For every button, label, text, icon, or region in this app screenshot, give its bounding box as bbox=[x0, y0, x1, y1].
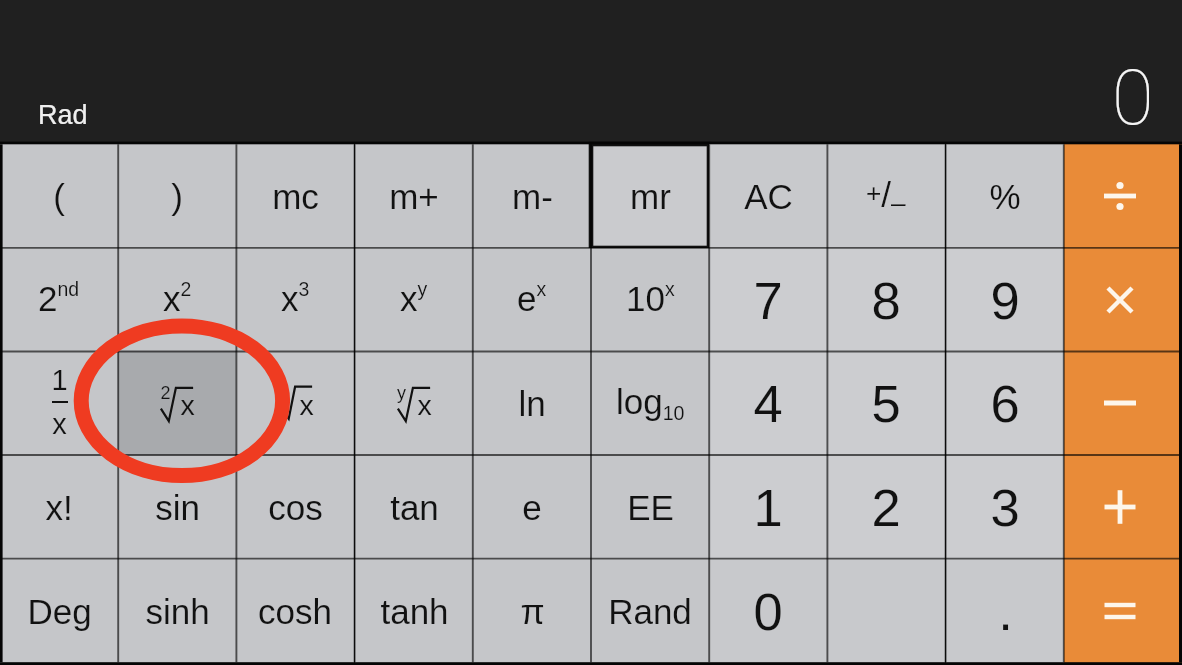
button[interactable]: Rand bbox=[591, 559, 709, 663]
button[interactable]: 2 bbox=[118, 351, 236, 455]
button[interactable]: y bbox=[355, 351, 473, 455]
button[interactable]: +/– bbox=[827, 144, 945, 248]
button[interactable]: log10 bbox=[591, 351, 709, 455]
button[interactable]: AC bbox=[709, 144, 827, 248]
staticText: 5 bbox=[871, 374, 901, 433]
staticText: ) bbox=[171, 177, 183, 216]
button[interactable]: . bbox=[946, 559, 1064, 663]
staticText: ( bbox=[53, 177, 65, 216]
staticText: x! bbox=[45, 488, 73, 527]
button[interactable]: cos bbox=[236, 455, 354, 559]
button[interactable]: 5 bbox=[827, 351, 945, 455]
button[interactable]: 8 bbox=[827, 248, 945, 352]
staticText: 6 bbox=[990, 374, 1020, 433]
staticText: 10x bbox=[626, 278, 675, 318]
button[interactable]: Multiply bbox=[1064, 248, 1182, 352]
staticText: 7 bbox=[753, 271, 783, 330]
staticText: x3 bbox=[281, 278, 310, 318]
staticText: m- bbox=[512, 177, 553, 216]
button[interactable]: tanh bbox=[355, 559, 473, 663]
staticText: Rad bbox=[38, 100, 88, 130]
button[interactable]: 1 bbox=[0, 351, 118, 455]
staticText: x bbox=[180, 389, 195, 421]
staticText: π bbox=[520, 592, 545, 631]
staticText: x bbox=[417, 389, 432, 421]
staticText: 0 bbox=[1112, 53, 1154, 142]
button[interactable]: Equals bbox=[1064, 559, 1182, 663]
staticText: e bbox=[522, 488, 542, 527]
staticText: 2 bbox=[160, 383, 171, 403]
button[interactable]: x! bbox=[0, 455, 118, 559]
button[interactable]: 10x bbox=[591, 248, 709, 352]
staticText: 8 bbox=[871, 271, 901, 330]
button[interactable]: cosh bbox=[236, 559, 354, 663]
button[interactable]: sinh bbox=[118, 559, 236, 663]
staticText: x bbox=[299, 389, 314, 421]
staticText: ex bbox=[517, 278, 547, 318]
button[interactable]: Divide bbox=[1064, 144, 1182, 248]
button[interactable]: Deg bbox=[0, 559, 118, 663]
staticText: sin bbox=[155, 488, 200, 527]
staticText: tanh bbox=[380, 592, 449, 631]
staticText: 4 bbox=[753, 374, 783, 433]
button[interactable]: 4 bbox=[709, 351, 827, 455]
button[interactable]: 3 bbox=[946, 455, 1064, 559]
button[interactable]: Plus bbox=[1064, 455, 1182, 559]
button[interactable]: mc bbox=[236, 144, 354, 248]
staticText: 9 bbox=[990, 271, 1020, 330]
button[interactable]: ) bbox=[118, 144, 236, 248]
staticText: ln bbox=[518, 384, 546, 423]
staticText: Rand bbox=[608, 592, 692, 631]
button[interactable]: 2nd bbox=[0, 248, 118, 352]
button[interactable]: tan bbox=[355, 455, 473, 559]
staticText: Deg bbox=[27, 592, 92, 631]
staticText: x2 bbox=[163, 278, 192, 318]
staticText: mc bbox=[272, 177, 319, 216]
staticText: . bbox=[998, 582, 1013, 641]
staticText: log10 bbox=[616, 382, 685, 424]
staticText: +/– bbox=[866, 175, 906, 218]
staticText: 0 bbox=[753, 582, 783, 641]
staticText: 3 bbox=[990, 478, 1020, 537]
button[interactable]: ln bbox=[473, 351, 591, 455]
button[interactable]: xy bbox=[355, 248, 473, 352]
button[interactable]: 7 bbox=[709, 248, 827, 352]
button[interactable]: 2 bbox=[827, 455, 945, 559]
button[interactable]: π bbox=[473, 559, 591, 663]
staticText: cosh bbox=[258, 592, 332, 631]
staticText: xy bbox=[400, 278, 428, 318]
staticText: AC bbox=[744, 177, 793, 216]
staticText: y bbox=[397, 383, 406, 403]
button[interactable]: ex bbox=[473, 248, 591, 352]
button[interactable]: mr bbox=[591, 144, 709, 248]
button[interactable]: e bbox=[473, 455, 591, 559]
staticText: cos bbox=[268, 488, 323, 527]
staticText: 1 bbox=[51, 364, 68, 396]
staticText: x bbox=[52, 408, 67, 440]
button[interactable]: m- bbox=[473, 144, 591, 248]
staticText: EE bbox=[627, 488, 674, 527]
staticText: sinh bbox=[145, 592, 210, 631]
button[interactable]: 0 bbox=[709, 559, 945, 663]
button[interactable]: 1 bbox=[709, 455, 827, 559]
button[interactable]: x bbox=[236, 351, 354, 455]
button[interactable]: sin bbox=[118, 455, 236, 559]
button[interactable]: Minus bbox=[1064, 351, 1182, 455]
button[interactable]: ( bbox=[0, 144, 118, 248]
staticText: 2 bbox=[871, 478, 901, 537]
button[interactable]: x2 bbox=[118, 248, 236, 352]
staticText: mr bbox=[630, 177, 671, 216]
staticText: tan bbox=[390, 488, 439, 527]
staticText: % bbox=[989, 177, 1021, 216]
staticText: m+ bbox=[389, 177, 439, 216]
button[interactable]: EE bbox=[591, 455, 709, 559]
button[interactable]: x3 bbox=[236, 248, 354, 352]
button[interactable]: 9 bbox=[946, 248, 1064, 352]
button[interactable]: 6 bbox=[946, 351, 1064, 455]
staticText: 2nd bbox=[38, 278, 80, 318]
button[interactable]: m+ bbox=[355, 144, 473, 248]
staticText: 1 bbox=[753, 478, 783, 537]
button[interactable]: % bbox=[946, 144, 1064, 248]
